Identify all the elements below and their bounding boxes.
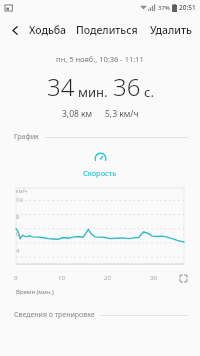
- button[interactable]: Назад: [4, 19, 26, 41]
- staticText: с.: [144, 83, 154, 101]
- staticText: 20: [104, 274, 111, 282]
- staticText: Время (мин.): [16, 288, 54, 296]
- staticText: 10: [16, 196, 23, 204]
- staticText: 10: [58, 274, 65, 282]
- staticText: 37%: [158, 4, 170, 12]
- staticText: 36: [113, 70, 141, 103]
- button[interactable]: Развернуть график: [179, 274, 188, 283]
- staticText: 5,3 км/ч: [105, 108, 139, 120]
- button[interactable]: Удалить: [146, 20, 196, 40]
- staticText: 30: [150, 274, 157, 282]
- staticText: Скорость: [83, 168, 117, 178]
- staticText: 20:51: [179, 3, 196, 12]
- staticText: 8: [16, 213, 20, 221]
- staticText: Удалить: [150, 23, 192, 37]
- staticText: Сведения о тренировке: [14, 310, 95, 320]
- button[interactable]: Ходьба: [26, 20, 70, 40]
- staticText: пн, 5 нояб., 10:36 - 11:11: [0, 54, 200, 64]
- staticText: 0: [14, 274, 18, 282]
- button[interactable]: Поделиться: [72, 20, 142, 40]
- staticText: км/ч: [16, 188, 28, 195]
- staticText: 3,08 км: [62, 108, 93, 120]
- staticText: Ходьба: [29, 23, 67, 37]
- button[interactable]: Скорость: [0, 152, 200, 178]
- staticText: мин.: [78, 83, 108, 101]
- staticText: График: [14, 132, 39, 142]
- staticText: Поделиться: [76, 23, 138, 37]
- staticText: 34: [47, 70, 75, 103]
- staticText: 4: [16, 247, 20, 255]
- staticText: 6: [16, 230, 20, 238]
